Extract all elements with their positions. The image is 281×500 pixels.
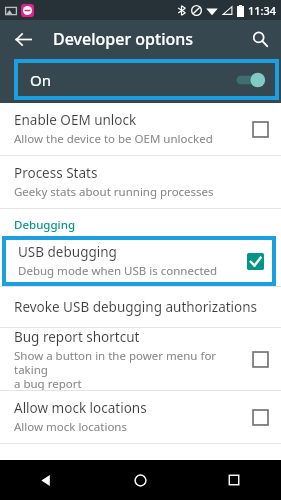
button[interactable]: Allow mock locations xyxy=(0,391,281,443)
staticText: Geeky stats about running processes xyxy=(14,184,214,200)
staticText: Allow mock locations xyxy=(14,419,127,435)
button[interactable]: Recent apps xyxy=(187,460,281,500)
button[interactable]: Back xyxy=(0,460,93,500)
button[interactable]: Home xyxy=(93,460,187,500)
button[interactable]: Bug report shortcut xyxy=(0,328,281,390)
button[interactable]: Search xyxy=(245,24,275,54)
button[interactable]: Process Stats xyxy=(0,156,281,208)
staticText: USB debugging xyxy=(18,243,117,261)
staticText: 11:34 xyxy=(248,3,277,18)
button[interactable]: Enable OEM unlock xyxy=(0,103,281,155)
button[interactable]: Back xyxy=(8,24,38,54)
button[interactable]: On xyxy=(18,63,275,96)
staticText: Process Stats xyxy=(14,164,98,182)
staticText: Bug report shortcut xyxy=(14,328,140,346)
staticText: Revoke USB debugging authorizations xyxy=(14,298,258,316)
staticText: Show a button in the power menu for taki… xyxy=(14,348,244,390)
staticText: Developer options xyxy=(53,28,194,50)
staticText: Allow mock locations xyxy=(14,399,147,417)
button[interactable]: USB debugging xyxy=(6,240,272,282)
staticText: Debug mode when USB is connected xyxy=(18,263,218,279)
staticText: Debugging xyxy=(14,217,76,233)
button[interactable]: Revoke USB debugging authorizations xyxy=(0,287,281,327)
staticText: Allow the device to be OEM unlocked xyxy=(14,131,213,147)
staticText: On xyxy=(30,70,51,90)
staticText: Enable OEM unlock xyxy=(14,111,137,129)
